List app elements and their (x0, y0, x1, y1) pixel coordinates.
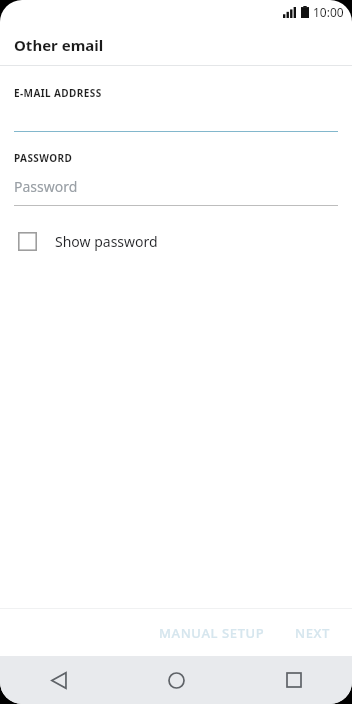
staticText: NEXT (295, 624, 330, 642)
button[interactable]: MANUAL SETUP (147, 616, 277, 650)
button[interactable]: NEXT (283, 616, 342, 650)
staticText: Show password (55, 232, 158, 251)
staticText: Other email (14, 35, 104, 55)
button[interactable]: Password (0, 177, 352, 206)
staticText: PASSWORD (14, 151, 73, 165)
button[interactable]: Home (118, 656, 235, 704)
button[interactable]: Show password (0, 224, 352, 258)
staticText: Password (14, 177, 78, 196)
staticText: E-MAIL ADDRESS (14, 86, 102, 100)
staticText: 10:00 (313, 4, 344, 20)
button[interactable]: Back (0, 656, 118, 704)
button[interactable]: Recent apps (235, 656, 352, 704)
staticText: MANUAL SETUP (159, 624, 265, 642)
